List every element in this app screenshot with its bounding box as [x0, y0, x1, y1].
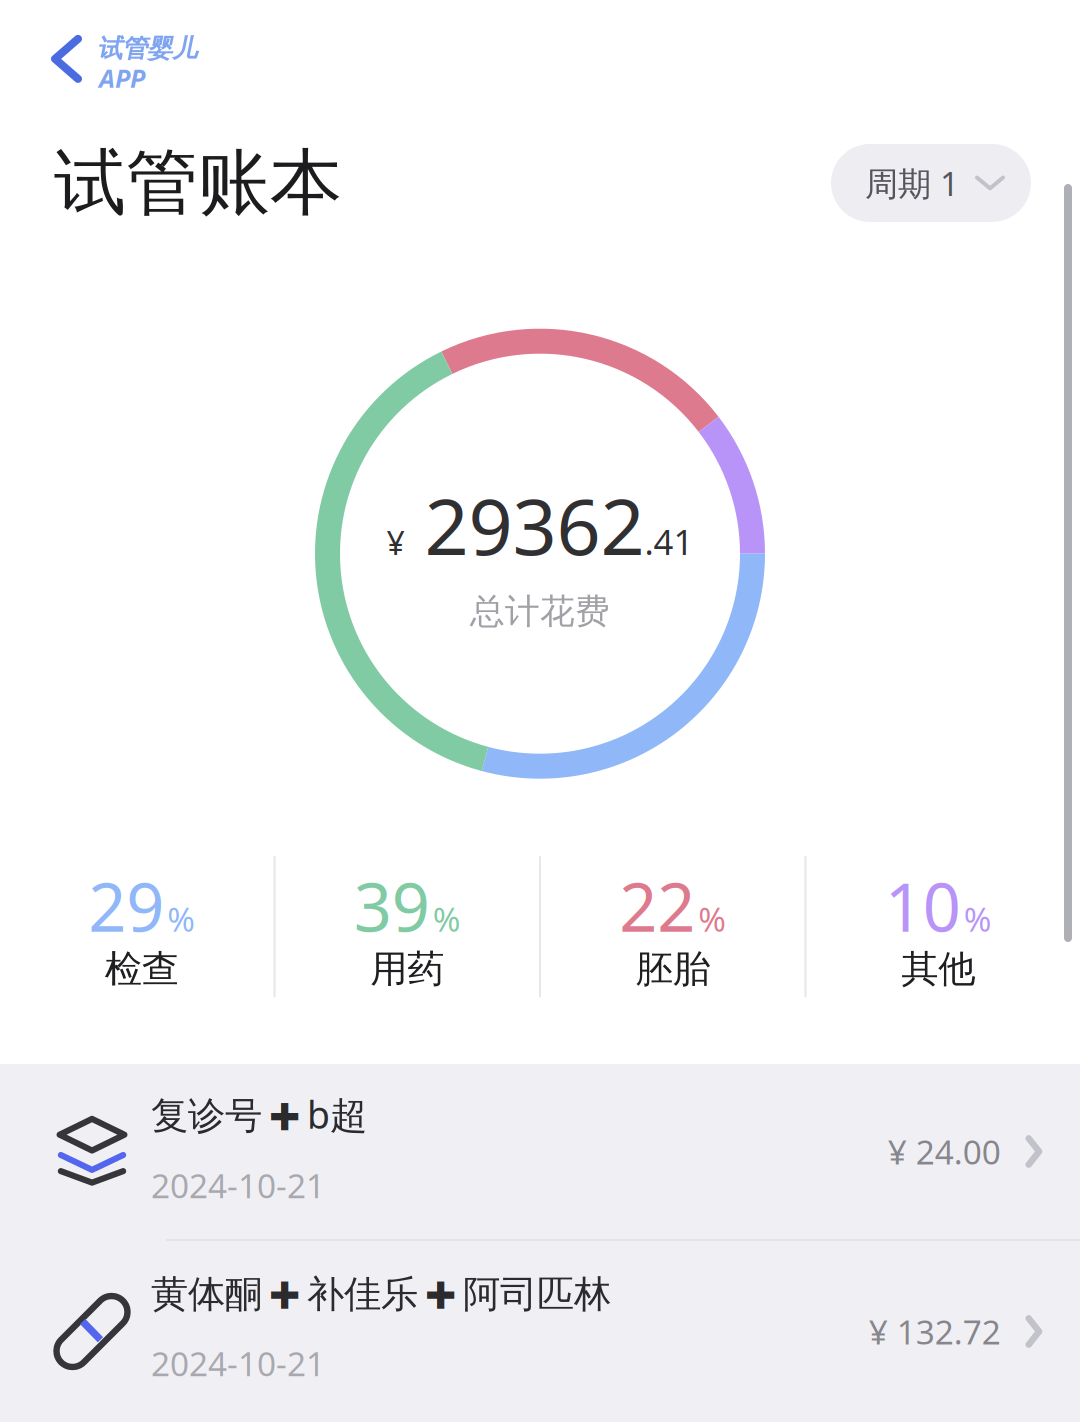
- staticText: APP: [99, 61, 145, 95]
- staticText: ¥: [386, 521, 404, 564]
- staticText: 2024-10-21: [151, 1341, 325, 1386]
- staticText: 试管账本: [54, 139, 342, 227]
- staticText: 39: [354, 861, 430, 950]
- staticText: %: [698, 897, 726, 941]
- staticText: 10: [885, 861, 961, 950]
- staticText: ¥ 24.00: [888, 1129, 1001, 1174]
- staticText: 22: [619, 861, 695, 950]
- button[interactable]: 黄体酮 ✚ 补佳乐 ✚ 阿司匹林: [0, 1241, 1080, 1422]
- staticText: %: [167, 897, 195, 941]
- staticText: ¥ 132.72: [869, 1309, 1001, 1354]
- staticText: 其他: [901, 946, 975, 992]
- staticText: .41: [644, 518, 693, 564]
- staticText: 胚胎: [636, 946, 710, 992]
- staticText: 2024-10-21: [151, 1163, 325, 1207]
- staticText: %: [964, 897, 992, 941]
- staticText: 试管婴儿: [97, 33, 197, 64]
- staticText: 复诊号 ✚ b超: [151, 1090, 367, 1139]
- staticText: 黄体酮 ✚ 补佳乐 ✚ 阿司匹林: [151, 1271, 611, 1317]
- button[interactable]: Back: [0, 0, 197, 95]
- staticText: 29362: [424, 474, 644, 576]
- staticText: 周期 1: [865, 161, 959, 205]
- staticText: 检查: [105, 946, 179, 992]
- staticText: %: [433, 897, 461, 941]
- button[interactable]: 复诊号 ✚ b超: [0, 1064, 1080, 1239]
- staticText: 用药: [370, 946, 444, 992]
- button[interactable]: 周期 1: [831, 144, 1031, 222]
- staticText: 29: [88, 861, 164, 950]
- staticText: 总计花费: [470, 590, 610, 633]
